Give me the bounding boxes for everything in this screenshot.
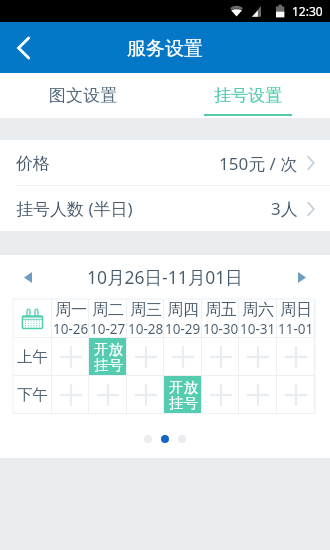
staticText: 周四 [167,300,199,320]
staticText: 11-01 [278,320,314,338]
staticText: 12:30 [292,3,323,19]
staticText: 3人 [271,197,298,220]
button[interactable]: 挂号人数 (半日) [0,186,330,231]
staticText: 10-27 [90,320,126,338]
staticText: 价格 [16,153,50,174]
staticText: 10-29 [165,320,201,338]
button[interactable] [164,338,202,376]
button[interactable]: 开放 挂号 [89,338,127,376]
button[interactable] [277,376,315,414]
staticText: 开放 挂号 [169,378,198,412]
button[interactable]: Previous week [0,255,56,299]
staticText: 周一 [55,300,87,320]
staticText: 10-28 [128,320,164,338]
staticText: 10-26 [53,320,89,338]
staticText: 开放 挂号 [94,340,123,374]
button[interactable]: Back [0,22,46,73]
staticText: 挂号人数 (半日) [16,197,133,220]
button[interactable] [127,376,164,414]
button[interactable] [89,376,127,414]
button[interactable]: 价格 [0,140,330,186]
staticText: 下午 [17,385,48,405]
button[interactable] [52,376,89,414]
staticText: 150元 / 次 [219,152,298,175]
staticText: 周日 [280,300,312,320]
staticText: 图文设置 [49,85,117,106]
button[interactable] [202,338,239,376]
staticText: 上午 [17,347,48,367]
button[interactable] [277,338,315,376]
button[interactable] [127,338,164,376]
staticText: 10-30 [203,320,239,338]
button[interactable] [239,338,277,376]
button[interactable]: 挂号设置 [165,73,330,118]
staticText: 周六 [242,300,274,320]
staticText: 10月26日-11月01日 [87,265,243,289]
staticText: 周五 [205,300,237,320]
button[interactable]: Next week [274,255,330,299]
staticText: 服务设置 [127,37,203,61]
button[interactable] [52,338,89,376]
button[interactable]: 开放 挂号 [164,376,202,414]
staticText: 周二 [92,300,124,320]
button[interactable] [202,376,239,414]
button[interactable]: 图文设置 [0,73,165,118]
staticText: 挂号设置 [214,85,282,106]
button[interactable] [239,376,277,414]
staticText: 周三 [130,300,162,320]
staticText: 10-31 [240,320,276,338]
